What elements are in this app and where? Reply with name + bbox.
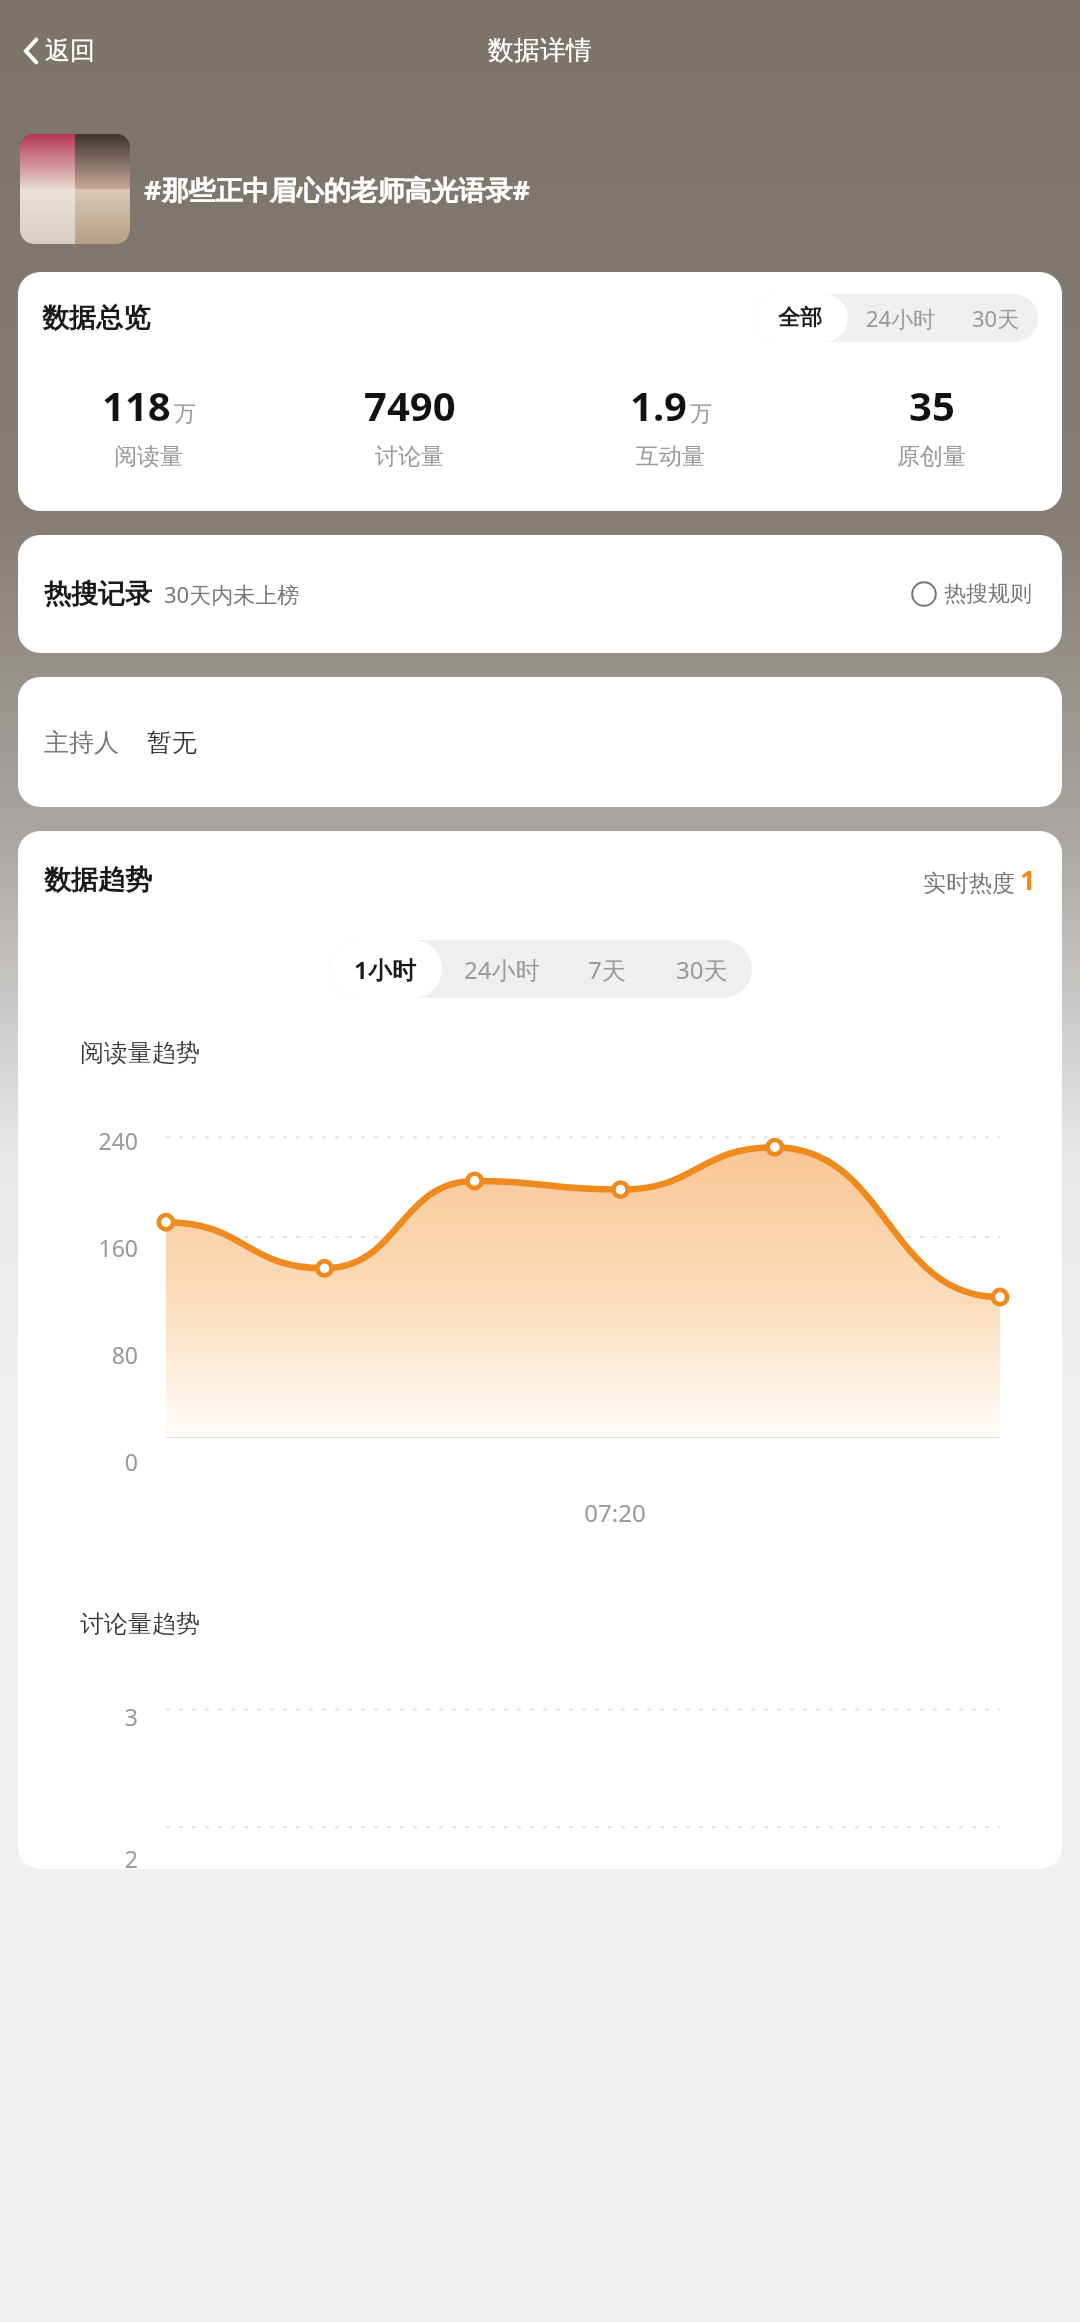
button[interactable]: 35 (801, 378, 1062, 471)
staticText: 2 (18, 1843, 138, 1869)
staticText: 返回 (45, 35, 95, 66)
button[interactable]: 118 (18, 378, 279, 471)
staticText: 原创量 (897, 442, 966, 471)
button[interactable]: 30天 (954, 294, 1038, 342)
button[interactable]: 返回 (14, 29, 105, 72)
staticText: 实时热度 (923, 869, 1015, 898)
staticText: 万 (174, 400, 196, 428)
button[interactable]: 24小时 (848, 294, 954, 342)
staticText: 118 (102, 378, 171, 432)
staticText: 热搜规则 (944, 580, 1032, 608)
staticText: 阅读量趋势 (80, 1038, 200, 1068)
button[interactable]: #那些正中眉心的老师高光语录# (0, 134, 1080, 244)
staticText: 1小时 (354, 953, 416, 986)
staticText: 1.9 (630, 378, 687, 432)
button[interactable]: 7天 (562, 940, 652, 998)
staticText: 万 (690, 400, 712, 428)
staticText: 24小时 (866, 303, 936, 333)
staticText: 7天 (588, 953, 626, 986)
staticText: 80 (18, 1339, 138, 1370)
staticText: 30天 (972, 303, 1020, 333)
staticText: 30天内未上榜 (164, 579, 300, 609)
button[interactable]: 全部 (752, 294, 848, 342)
staticText: 3 (18, 1701, 138, 1732)
button[interactable]: 24小时 (442, 940, 562, 998)
staticText: 阅读量 (114, 442, 183, 471)
staticText: 35 (909, 378, 955, 432)
staticText: 240 (18, 1125, 138, 1156)
staticText: 讨论量趋势 (80, 1609, 200, 1639)
staticText: 讨论量 (375, 442, 444, 471)
staticText: 07:20 (168, 1496, 1062, 1529)
button[interactable]: 热搜规则 (907, 576, 1036, 612)
staticText: 数据详情 (488, 34, 592, 67)
button[interactable]: 7490 (279, 378, 540, 471)
staticText: 24小时 (464, 953, 540, 986)
button[interactable]: 30天 (652, 940, 752, 998)
staticText: 数据趋势 (44, 863, 152, 897)
staticText: 1 (1020, 861, 1036, 898)
staticText: 0 (18, 1446, 138, 1477)
staticText: 160 (18, 1232, 138, 1263)
staticText: 主持人 (44, 727, 119, 758)
staticText: 全部 (778, 304, 822, 332)
staticText: 互动量 (636, 442, 705, 471)
staticText: 热搜记录 (44, 577, 152, 611)
staticText: 暂无 (147, 727, 197, 758)
button[interactable]: 1小时 (328, 940, 442, 998)
staticText: 7490 (364, 378, 456, 432)
staticText: 数据总览 (42, 301, 150, 335)
staticText: 30天 (676, 953, 728, 986)
staticText: #那些正中眉心的老师高光语录# (144, 171, 530, 208)
button[interactable]: 1.9 (540, 378, 801, 471)
